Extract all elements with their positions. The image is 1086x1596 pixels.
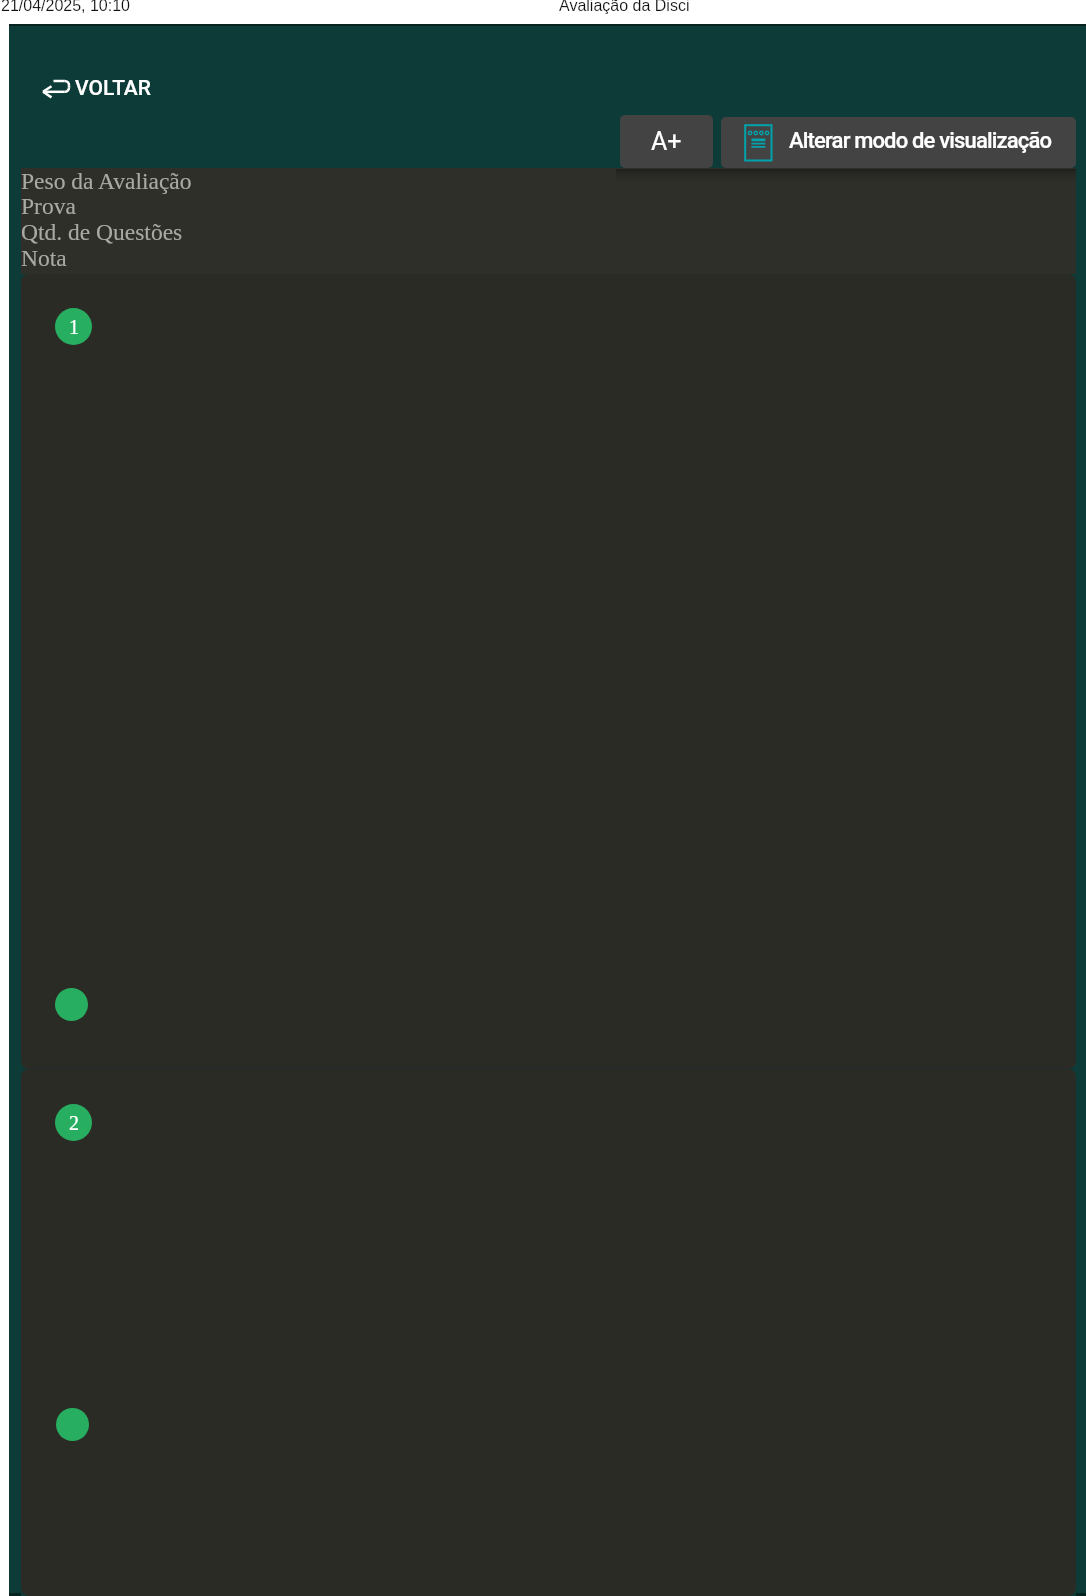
button[interactable]: A+ (620, 115, 713, 168)
button[interactable]: Alterar modo de visualização (721, 117, 1076, 168)
button[interactable]: 1 (21, 274, 1076, 1069)
staticText: 21/04/2025, 10:10 (1, 0, 131, 15)
button[interactable]: Voltar (39, 72, 154, 105)
staticText: 1 (69, 316, 79, 338)
staticText: Avaliação da Disci (559, 0, 690, 15)
other: Voltar (41, 79, 71, 98)
button[interactable]: 2 (21, 1069, 1076, 1596)
staticText: Alterar modo de visualização (789, 128, 1052, 154)
staticText: A+ (651, 127, 682, 156)
staticText: 2 (69, 1112, 79, 1134)
staticText: VOLTAR (75, 76, 151, 101)
staticText: Peso da Avaliação Prova Qtd. de Questões… (21, 168, 192, 272)
